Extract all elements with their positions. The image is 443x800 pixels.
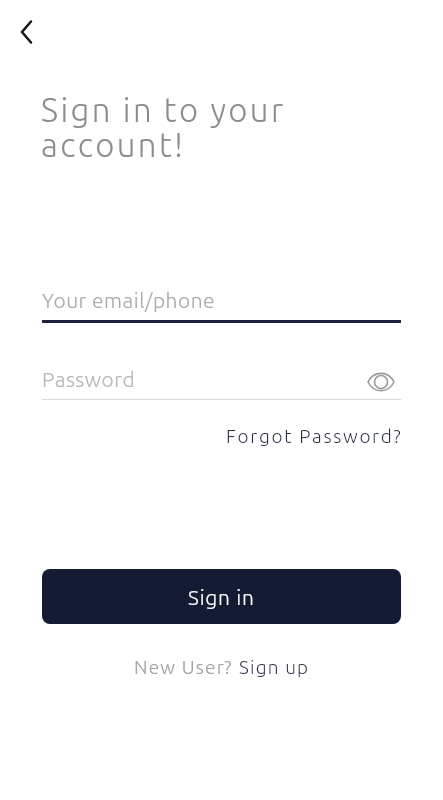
staticText: Sign in [188,585,255,609]
button[interactable]: Forgot Password? [226,425,403,446]
button[interactable]: Sign up [239,656,310,677]
staticText: Your email/phone [42,288,216,312]
staticText: Password [42,367,136,391]
button[interactable]: Sign in [42,569,401,624]
staticText: New User? [134,656,239,677]
button[interactable] [4,10,48,54]
staticText: Forgot Password? [226,425,403,446]
button[interactable] [360,361,402,403]
staticText: Sign in to your account! [41,91,286,163]
staticText: Sign up [239,656,310,677]
